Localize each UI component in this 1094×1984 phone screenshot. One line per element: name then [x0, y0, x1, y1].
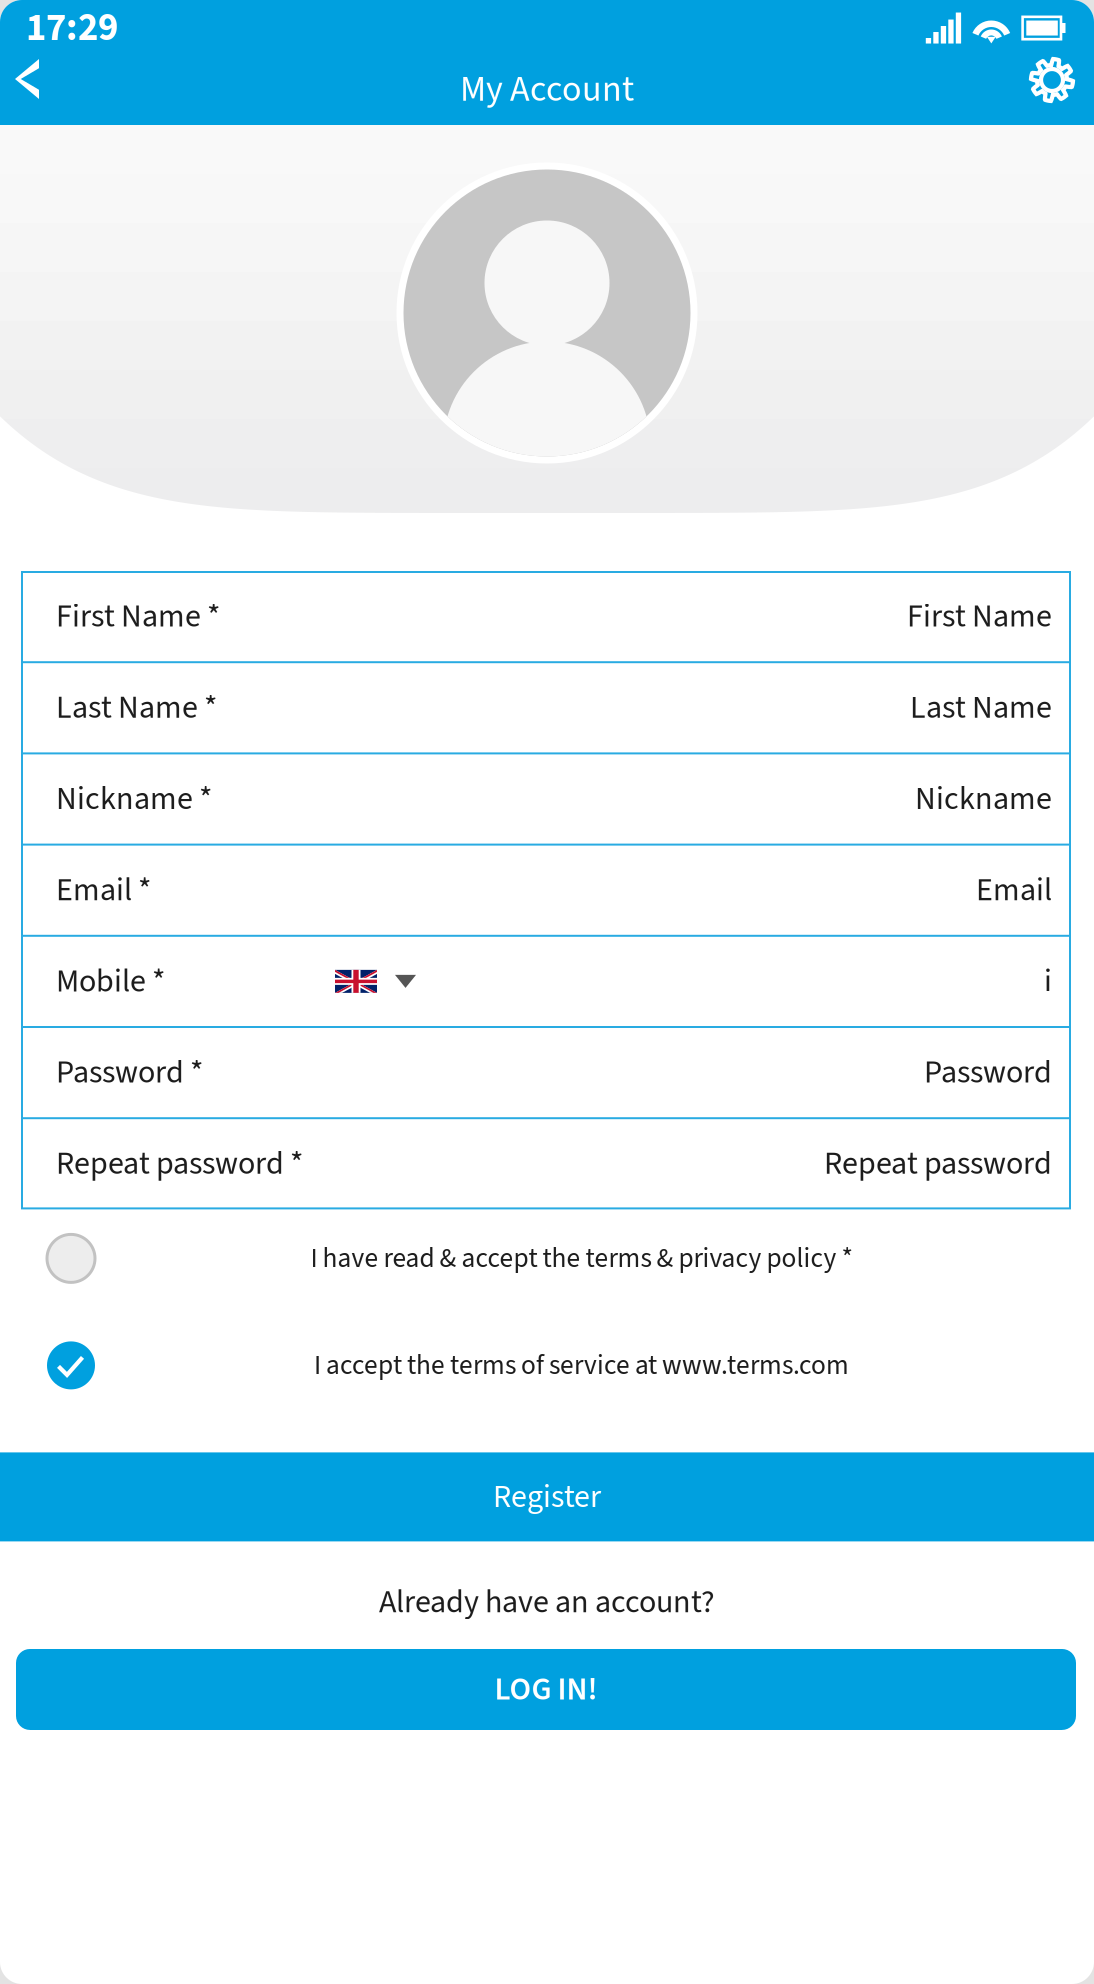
- staticText: My Account: [460, 64, 634, 115]
- staticText: I have read & accept the terms & privacy…: [310, 1239, 852, 1278]
- staticText: First Name *: [56, 594, 220, 639]
- staticText: First Name: [907, 594, 1052, 639]
- staticText: Register: [493, 1474, 601, 1520]
- staticText: LOG IN!: [494, 1667, 597, 1712]
- staticText: Last Name: [910, 685, 1052, 731]
- staticText: Password *: [56, 1050, 203, 1095]
- staticText: 17:29: [26, 0, 118, 56]
- staticText: Already have an account?: [379, 1579, 715, 1625]
- button[interactable]: I accept the terms of service at www.ter…: [0, 1328, 1094, 1402]
- staticText: Password: [924, 1050, 1052, 1095]
- button[interactable]: Settings: [998, 56, 1094, 125]
- button[interactable]: Back: [0, 56, 69, 125]
- staticText: i: [1044, 959, 1052, 1004]
- staticText: Repeat password: [824, 1141, 1052, 1187]
- staticText: Nickname *: [56, 776, 212, 822]
- staticText: I accept the terms of service at www.ter…: [314, 1346, 849, 1385]
- button[interactable]: LOG IN!: [16, 1649, 1076, 1730]
- staticText: Repeat password *: [56, 1141, 303, 1187]
- staticText: Mobile *: [56, 959, 165, 1004]
- staticText: Nickname: [915, 776, 1052, 822]
- staticText: Last Name *: [56, 685, 217, 731]
- staticText: Email *: [56, 867, 151, 913]
- staticText: Email: [976, 867, 1052, 913]
- button[interactable]: Register: [0, 1452, 1094, 1541]
- button[interactable]: I have read & accept the terms & privacy…: [0, 1221, 1094, 1295]
